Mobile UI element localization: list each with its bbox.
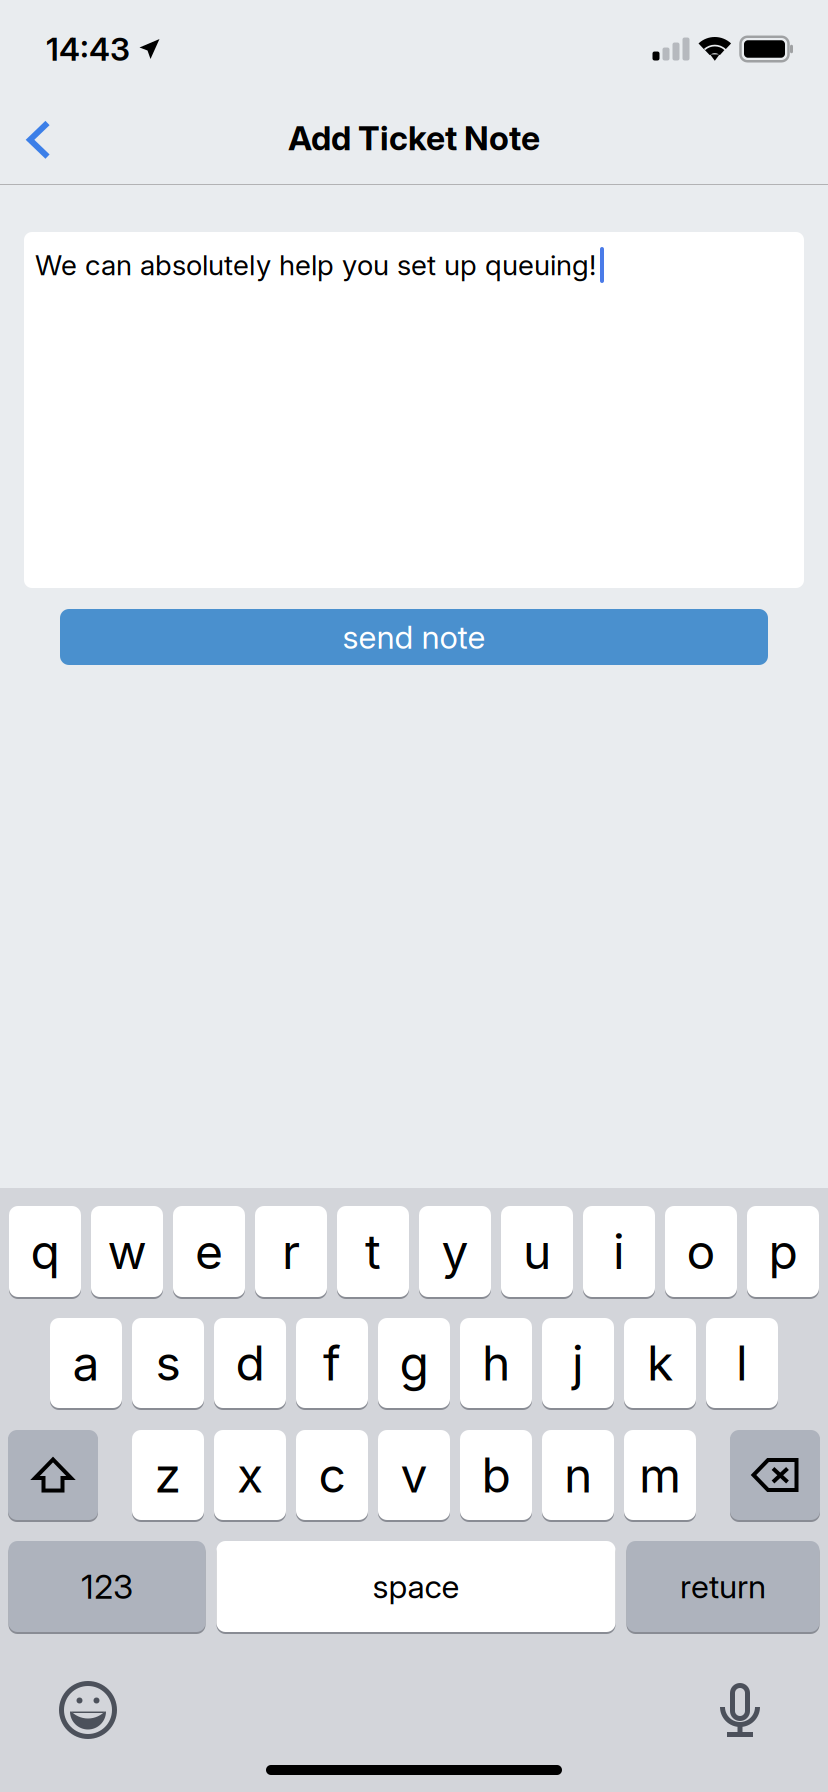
button[interactable]: Shift: [8, 1430, 98, 1522]
button[interactable]: p: [747, 1206, 819, 1299]
staticText: t: [365, 1222, 381, 1281]
button[interactable]: space: [216, 1541, 615, 1634]
button[interactable]: return: [626, 1541, 819, 1634]
staticText: y: [441, 1222, 468, 1281]
button[interactable]: h: [460, 1318, 532, 1410]
staticText: l: [736, 1334, 748, 1392]
staticText: return: [680, 1567, 766, 1606]
staticText: We can absolutely help you set up queuin…: [35, 248, 596, 282]
button[interactable]: l: [706, 1318, 778, 1410]
staticText: i: [613, 1222, 625, 1281]
button[interactable]: x: [214, 1430, 286, 1522]
staticText: f: [323, 1334, 341, 1392]
button[interactable]: q: [9, 1206, 81, 1299]
button[interactable]: r: [255, 1206, 327, 1299]
staticText: h: [482, 1334, 510, 1392]
button[interactable]: e: [173, 1206, 245, 1299]
button[interactable]: d: [214, 1318, 286, 1410]
staticText: s: [155, 1334, 180, 1392]
button[interactable]: b: [460, 1430, 532, 1522]
button[interactable]: f: [296, 1318, 368, 1410]
button[interactable]: a: [50, 1318, 122, 1410]
staticText: p: [768, 1222, 797, 1281]
staticText: u: [523, 1222, 551, 1281]
button[interactable]: j: [542, 1318, 614, 1410]
staticText: e: [195, 1222, 223, 1281]
button[interactable]: g: [378, 1318, 450, 1410]
button[interactable]: n: [542, 1430, 614, 1522]
button[interactable]: v: [378, 1430, 450, 1522]
button[interactable]: Emoji keyboard: [60, 1682, 116, 1738]
staticText: 14:43: [46, 30, 130, 68]
button[interactable]: k: [624, 1318, 696, 1410]
staticText: r: [282, 1222, 300, 1281]
staticText: 123: [81, 1566, 133, 1607]
button[interactable]: t: [337, 1206, 409, 1299]
button[interactable]: s: [132, 1318, 204, 1410]
button[interactable]: z: [132, 1430, 204, 1522]
staticText: m: [639, 1446, 681, 1504]
staticText: x: [237, 1446, 263, 1504]
staticText: v: [400, 1446, 427, 1504]
staticText: o: [686, 1222, 715, 1281]
staticText: j: [572, 1334, 584, 1392]
staticText: n: [564, 1446, 592, 1504]
button[interactable]: i: [583, 1206, 655, 1299]
staticText: a: [72, 1334, 99, 1392]
button[interactable]: Dictate: [720, 1681, 760, 1739]
staticText: g: [399, 1334, 428, 1392]
button[interactable]: 123: [8, 1541, 205, 1634]
button[interactable]: Back: [0, 92, 78, 184]
staticText: send note: [342, 618, 485, 656]
button[interactable]: c: [296, 1430, 368, 1522]
button[interactable]: m: [624, 1430, 696, 1522]
button[interactable]: send note: [60, 609, 768, 665]
staticText: space: [372, 1567, 459, 1606]
staticText: b: [481, 1446, 510, 1504]
staticText: Add Ticket Note: [288, 118, 540, 158]
staticText: z: [154, 1446, 181, 1504]
button[interactable]: y: [419, 1206, 491, 1299]
staticText: q: [30, 1222, 59, 1281]
staticText: d: [235, 1334, 264, 1392]
button[interactable]: o: [665, 1206, 737, 1299]
button[interactable]: u: [501, 1206, 573, 1299]
button[interactable]: Delete: [730, 1430, 820, 1522]
staticText: k: [647, 1334, 673, 1392]
button[interactable]: w: [91, 1206, 163, 1299]
staticText: c: [318, 1446, 345, 1504]
staticText: w: [107, 1222, 146, 1281]
